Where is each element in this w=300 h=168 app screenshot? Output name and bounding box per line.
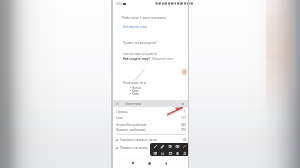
button[interactable]: Markup tool 4 bbox=[174, 143, 180, 149]
staticText: Знаков (без пробелов) bbox=[116, 123, 147, 127]
staticText: Статистика bbox=[125, 102, 142, 106]
button[interactable]: Знаков (без пробелов) bbox=[116, 122, 186, 127]
button[interactable]: Знаков (с пробелами) bbox=[116, 127, 186, 132]
button[interactable]: Markup tool 5 bbox=[181, 143, 187, 149]
button[interactable]: Close bbox=[180, 101, 185, 106]
button[interactable]: Показать статистику bbox=[116, 145, 186, 150]
staticText: 9:54 bbox=[116, 2, 122, 6]
staticText: Учитывать надписи сноски bbox=[120, 138, 157, 142]
button[interactable]: Home bbox=[143, 158, 156, 168]
button[interactable]: Markup tool 1 bbox=[152, 143, 158, 149]
button[interactable]: Markup tool 10 bbox=[181, 150, 187, 156]
staticText: 137 bbox=[181, 116, 186, 120]
staticText: 1 bbox=[184, 110, 186, 114]
button[interactable]: Markup tool 7 bbox=[159, 150, 165, 156]
button[interactable]: Страниц bbox=[116, 109, 186, 114]
button[interactable]: Слов bbox=[116, 115, 186, 120]
button[interactable]: Markup tool 8 bbox=[167, 150, 173, 156]
button[interactable]: Back bbox=[159, 158, 172, 168]
button[interactable]: Markup tool 9 bbox=[174, 150, 180, 156]
button[interactable]: Markup tool 3 bbox=[167, 143, 173, 149]
staticText: Знаков (с пробелами) bbox=[116, 128, 146, 132]
staticText: Страниц bbox=[116, 110, 128, 114]
button[interactable]: Recents bbox=[126, 158, 139, 168]
staticText: Обычный текст bbox=[151, 57, 174, 61]
staticText: 840 bbox=[181, 123, 186, 127]
staticText: Показать статистику bbox=[120, 146, 148, 150]
staticText: Веб-версия темы bbox=[123, 25, 148, 29]
staticText: Рыба bbox=[132, 92, 139, 95]
staticText: Как создать тему? bbox=[123, 57, 151, 61]
staticText: Слов bbox=[116, 116, 123, 120]
button[interactable]: Учитывать надписи сноски bbox=[116, 137, 186, 142]
staticText: Начальные теги bbox=[123, 81, 146, 85]
staticText: Сделай виды документа bbox=[123, 52, 158, 56]
staticText: 978 bbox=[181, 128, 186, 132]
button[interactable]: Markup tool 6 bbox=[152, 150, 158, 156]
button[interactable]: Markup tool 2 bbox=[159, 143, 165, 149]
button[interactable]: Back bbox=[114, 100, 119, 107]
staticText: Привет, как ваши дела? bbox=[123, 41, 157, 45]
staticText: Клип bbox=[132, 89, 139, 92]
staticText: Фильм bbox=[132, 86, 141, 89]
button[interactable]: Back bbox=[112, 100, 188, 107]
staticText: Работаем с заполнением bbox=[122, 15, 166, 20]
